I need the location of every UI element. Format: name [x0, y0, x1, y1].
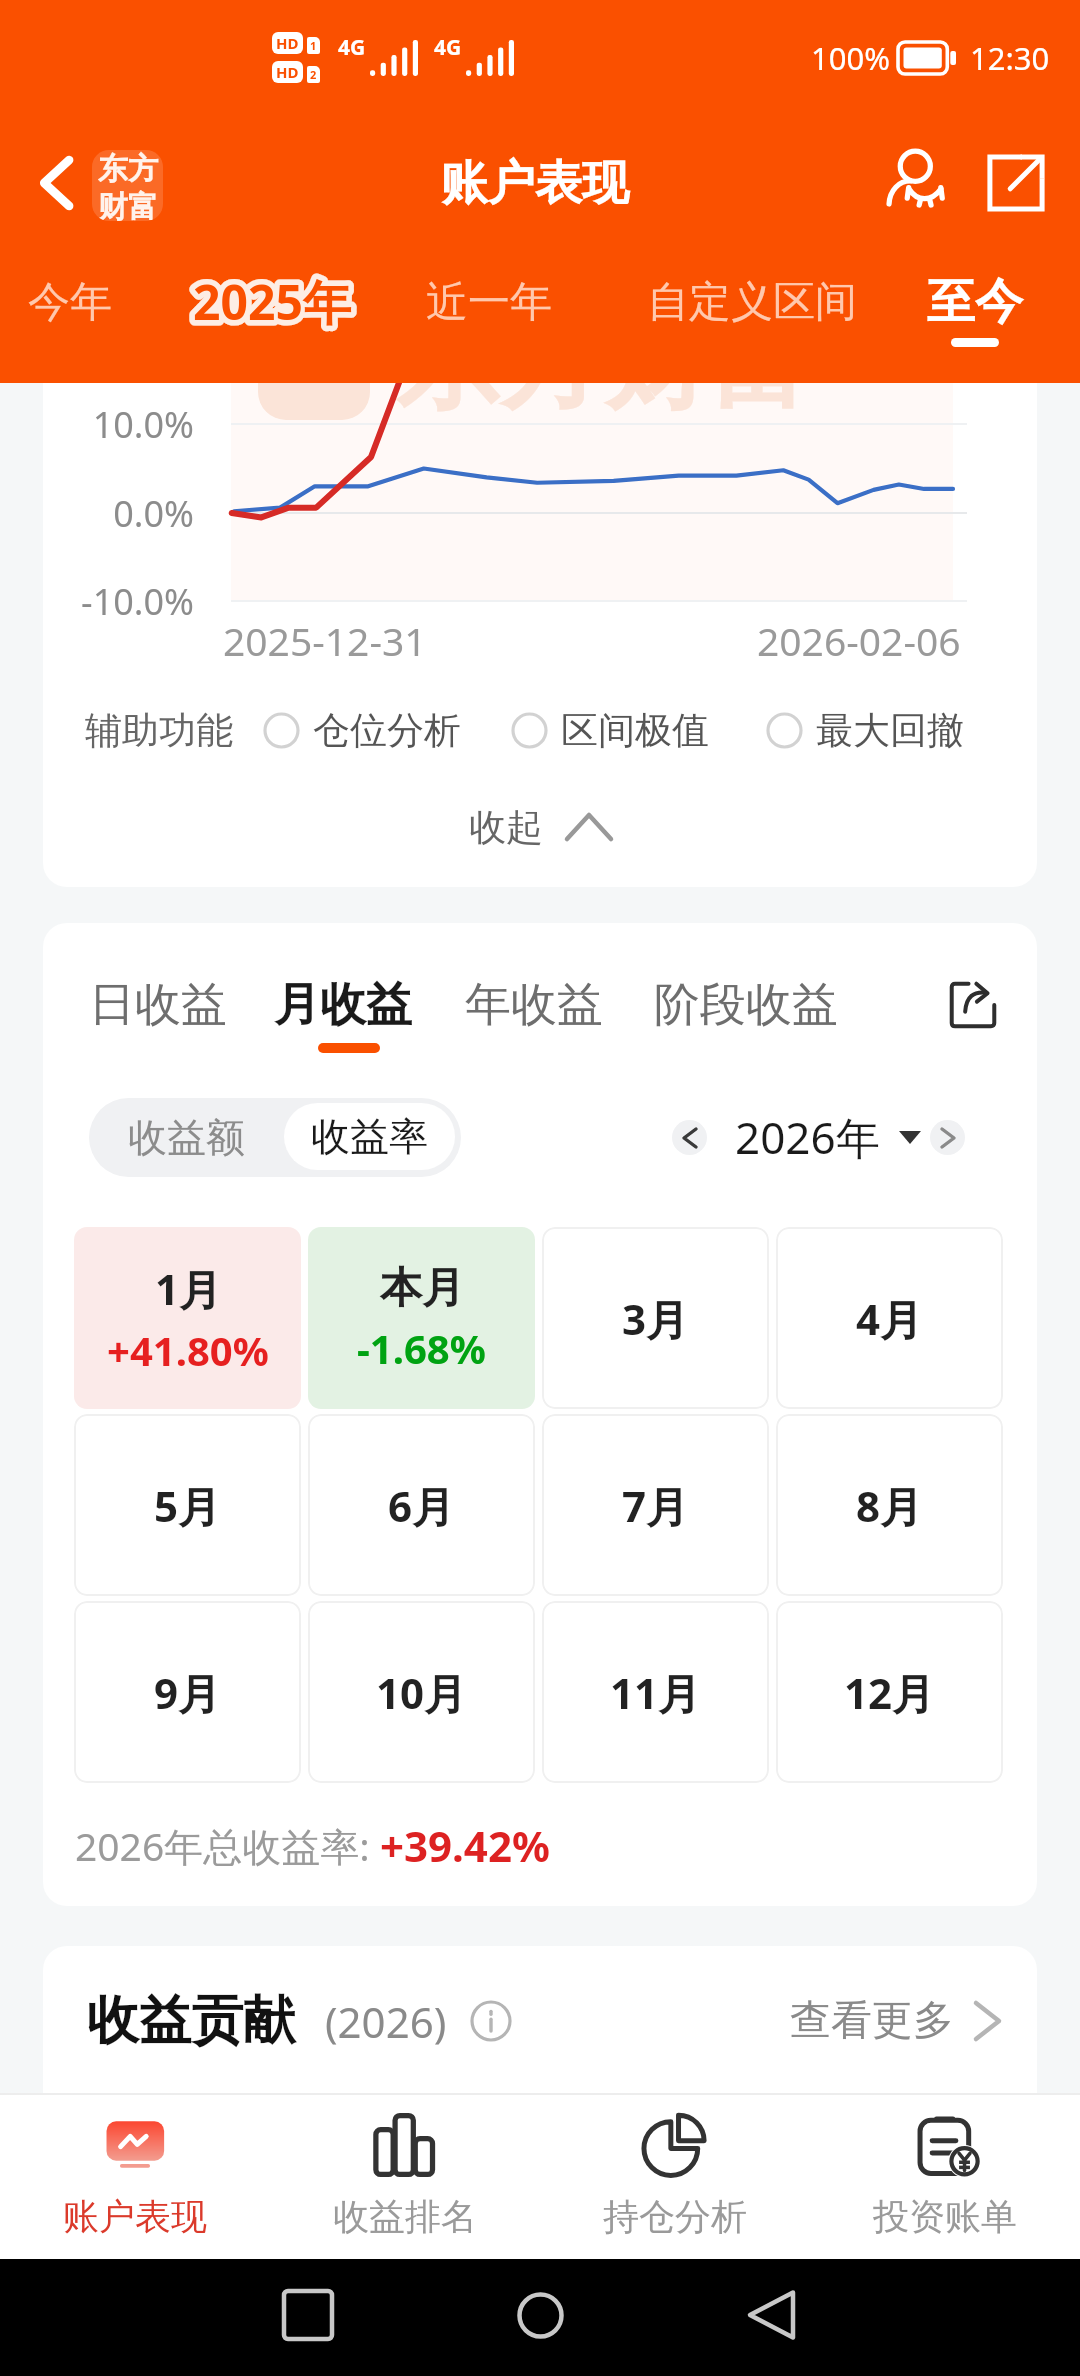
button[interactable]: 最大回撤: [766, 707, 964, 754]
button[interactable]: 最近任务: [258, 2265, 358, 2365]
button[interactable]: 账户表现: [0, 2095, 270, 2259]
button[interactable]: 年收益: [465, 969, 603, 1041]
button[interactable]: 6月: [308, 1414, 535, 1596]
staticText: 12月: [844, 1664, 935, 1721]
staticText: 收益排名: [333, 2194, 477, 2239]
staticText: 4月: [856, 1290, 923, 1347]
button[interactable]: 持仓分析: [540, 2095, 810, 2259]
staticText: 4G: [434, 33, 462, 62]
button[interactable]: 5月: [74, 1414, 301, 1596]
staticText: 11月: [610, 1664, 701, 1721]
button[interactable]: 今年: [0, 250, 160, 354]
staticText: 10月: [376, 1664, 467, 1721]
staticText: 本月: [380, 1262, 464, 1315]
staticText: 月收益: [274, 976, 412, 1034]
staticText: 收益率: [311, 1112, 428, 1161]
staticText: 10.0%: [92, 400, 194, 449]
staticText: 6月: [388, 1477, 455, 1534]
staticText: 今年: [28, 276, 112, 329]
staticText: 5月: [154, 1477, 221, 1534]
button[interactable]: 收益排名: [270, 2095, 540, 2259]
button[interactable]: 11月: [542, 1601, 769, 1783]
staticText: 仓位分析: [313, 707, 461, 754]
button[interactable]: 自定义区间: [612, 250, 892, 354]
staticText: 2026-02-06: [757, 614, 961, 667]
staticText: 收益贡献: [87, 1988, 295, 2054]
staticText: 2026年总收益率:: [75, 1819, 380, 1872]
button[interactable]: 区间极值: [511, 707, 709, 754]
button[interactable]: 12月: [776, 1601, 1003, 1783]
staticText: 财富: [98, 188, 158, 221]
staticText: -10.0%: [81, 577, 194, 626]
button[interactable]: 主屏幕: [490, 2265, 590, 2365]
button[interactable]: 仓位分析: [263, 707, 461, 754]
button[interactable]: 隐藏金额: [866, 137, 966, 229]
button[interactable]: 收益率: [284, 1103, 455, 1170]
staticText: 100%: [811, 37, 890, 79]
staticText: 区间极值: [561, 707, 709, 754]
staticText: 4G: [338, 33, 366, 62]
staticText: 近一年: [426, 276, 552, 329]
staticText: 7月: [622, 1477, 689, 1534]
staticText: 自定义区间: [647, 276, 857, 329]
staticText: HD: [276, 33, 299, 53]
button[interactable]: 收起: [43, 791, 1037, 863]
staticText: 东方: [98, 150, 158, 188]
staticText: 账户表现: [441, 154, 629, 213]
staticText: 收益额: [128, 1113, 245, 1162]
staticText: 9月: [154, 1664, 221, 1721]
button[interactable]: 本月: [308, 1227, 535, 1409]
staticText: +41.80%: [107, 1323, 269, 1377]
button[interactable]: 1月: [74, 1227, 301, 1409]
staticText: 最大回撤: [816, 707, 964, 754]
staticText: 投资账单: [873, 2194, 1017, 2239]
button[interactable]: 月收益: [274, 969, 412, 1041]
staticText: 8月: [856, 1477, 923, 1534]
button[interactable]: 返回: [720, 2265, 820, 2365]
button[interactable]: 9月: [74, 1601, 301, 1783]
button[interactable]: 8月: [776, 1414, 1003, 1596]
button[interactable]: 4月: [776, 1227, 1003, 1409]
staticText: 辅助功能: [85, 707, 233, 754]
staticText: 日收益: [89, 976, 227, 1034]
button[interactable]: 上一年: [672, 1120, 707, 1155]
staticText: 3月: [622, 1290, 689, 1347]
staticText: 2025-12-31: [223, 614, 427, 667]
button[interactable]: 收益额: [89, 1098, 284, 1177]
staticText: 东方财富: [396, 300, 812, 429]
button[interactable]: 阶段收益: [654, 969, 838, 1041]
staticText: 持仓分析: [603, 2194, 747, 2239]
button[interactable]: 分享: [966, 137, 1066, 229]
staticText: 阶段收益: [654, 976, 838, 1034]
button[interactable]: 至今: [890, 250, 1060, 354]
button[interactable]: 2026年: [735, 1103, 921, 1171]
staticText: 2025年: [193, 269, 351, 335]
staticText: 2025年: [193, 269, 351, 335]
button[interactable]: 投资账单: [810, 2095, 1080, 2259]
staticText: 2: [310, 67, 317, 82]
button[interactable]: 分享: [941, 969, 1005, 1041]
staticText: 0.0%: [113, 489, 194, 538]
staticText: 1月: [155, 1260, 222, 1317]
staticText: 12:30: [970, 37, 1050, 79]
button[interactable]: 日收益: [89, 969, 227, 1041]
staticText: 1: [310, 38, 317, 53]
staticText: (2026): [325, 1993, 447, 2050]
staticText: 账户表现: [63, 2194, 207, 2239]
staticText: -1.68%: [357, 1321, 486, 1375]
button[interactable]: 查看更多: [790, 1987, 999, 2055]
staticText: HD: [276, 62, 299, 82]
staticText: 2026年: [735, 1107, 880, 1167]
button[interactable]: 近一年: [389, 250, 589, 354]
staticText: 年收益: [465, 976, 603, 1034]
button[interactable]: 返回: [11, 137, 103, 229]
staticText: 至今: [927, 272, 1023, 332]
staticText: 查看更多: [790, 1995, 954, 2047]
button[interactable]: 10月: [308, 1601, 535, 1783]
button[interactable]: 2025年: [157, 250, 387, 354]
button[interactable]: 下一年: [930, 1120, 965, 1155]
button[interactable]: 7月: [542, 1414, 769, 1596]
staticText: 收起: [469, 804, 543, 851]
button[interactable]: 3月: [542, 1227, 769, 1409]
staticText: +39.42%: [380, 1817, 550, 1874]
